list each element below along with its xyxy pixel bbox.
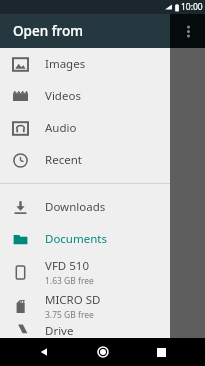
button[interactable]: VFD 510 [0,255,170,289]
staticText: Documents [45,231,107,247]
button[interactable]: Audio [0,112,170,144]
staticText: Images [45,56,86,72]
staticText: Audio [45,120,77,136]
staticText: 10:00 [181,1,203,13]
staticText: MICRO SD [45,292,101,308]
staticText: Videos [45,88,81,104]
button[interactable]: Videos [0,80,170,112]
staticText: Open from [13,22,83,40]
staticText: 3.75 GB free [45,309,94,321]
button[interactable]: Back [29,338,59,366]
staticText: Downloads [45,199,106,215]
button[interactable]: Recents [146,338,176,366]
button[interactable]: MICRO SD [0,289,170,323]
button[interactable]: Home [88,338,118,366]
button[interactable]: Recent [0,144,170,176]
button[interactable]: Open from [0,14,170,48]
staticText: Drive [45,323,74,338]
staticText: 1.63 GB free [45,275,94,287]
button[interactable]: Images [0,48,170,80]
button[interactable]: Documents [0,223,170,255]
staticText: VFD 510 [45,258,89,274]
button[interactable]: Downloads [0,191,170,223]
staticText: Recent [45,152,82,168]
button[interactable]: Drive [0,323,170,338]
button[interactable]: More options [175,18,201,44]
